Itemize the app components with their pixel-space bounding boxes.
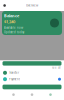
staticText: see all [52,66,61,69]
staticText: Updated today [4,30,24,34]
button[interactable]: Transfer [0,70,64,76]
button[interactable]: Profile [45,90,55,100]
button[interactable]: Continue [2,85,61,89]
button[interactable]: Activity [27,90,37,100]
staticText: Available now [4,26,23,29]
button[interactable]: Payment [0,76,64,82]
button[interactable]: see all [52,66,61,69]
staticText: Balance [4,13,19,18]
staticText: $1,240 [4,19,15,24]
staticText: Overview [26,4,38,7]
staticText: Transfer [9,71,19,74]
staticText: Payment [9,77,20,81]
button[interactable]: Primary action [2,61,61,66]
button[interactable]: Home [8,90,18,100]
button[interactable]: Menu [2,1,8,9]
button[interactable]: Details [50,18,59,27]
